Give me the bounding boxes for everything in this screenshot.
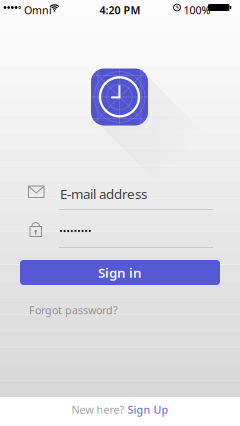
button[interactable]: Forgot password? (29, 303, 118, 317)
button[interactable]: Sign in (20, 260, 220, 285)
staticText: Omni (24, 3, 52, 17)
staticText: 4:20 PM (99, 3, 140, 17)
staticText: New here? (71, 402, 124, 417)
staticText: 100% (183, 3, 210, 17)
staticText: Sign in (98, 264, 142, 281)
staticText: E-mail address (60, 185, 147, 203)
staticText: Sign Up (127, 402, 168, 417)
staticText: Forgot password? (29, 303, 118, 317)
button[interactable]: Sign Up (127, 402, 168, 417)
